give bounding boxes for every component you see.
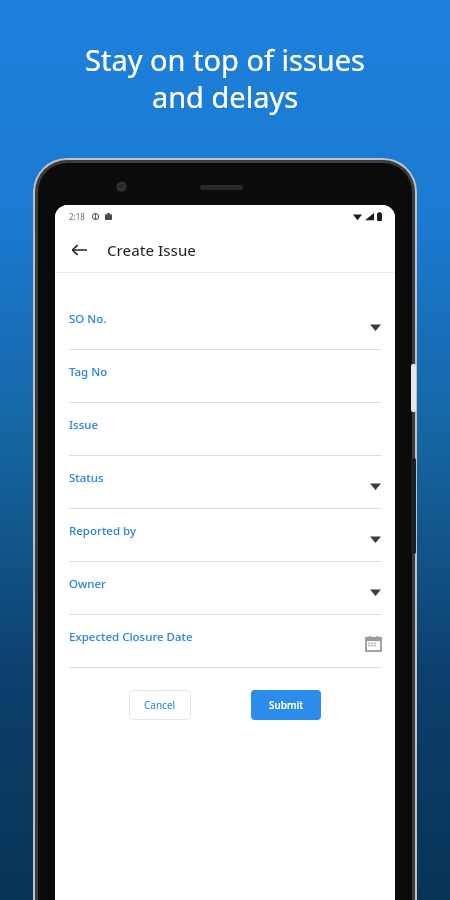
button[interactable]: Cancel bbox=[129, 690, 191, 720]
button[interactable]: Tag No bbox=[58, 350, 392, 403]
button[interactable]: SO No. bbox=[58, 297, 392, 350]
staticText: Reported by bbox=[69, 523, 136, 539]
staticText: Issue bbox=[69, 417, 99, 433]
staticText: Submit bbox=[269, 698, 303, 712]
staticText: Cancel bbox=[144, 698, 176, 712]
staticText: SO No. bbox=[69, 311, 107, 327]
staticText: Status bbox=[69, 470, 104, 486]
staticText: Tag No bbox=[69, 364, 108, 380]
staticText: Expected Closure Date bbox=[69, 629, 193, 645]
staticText: 2:18 bbox=[69, 211, 85, 222]
button[interactable]: Expected Closure Date bbox=[58, 615, 392, 668]
button[interactable]: Submit bbox=[251, 690, 321, 720]
button[interactable]: Back bbox=[63, 234, 95, 266]
button[interactable]: Status bbox=[58, 456, 392, 509]
button[interactable]: Owner bbox=[58, 562, 392, 615]
staticText: Create Issue bbox=[107, 240, 196, 260]
button[interactable]: Reported by bbox=[58, 509, 392, 562]
staticText: Owner bbox=[69, 576, 106, 592]
staticText: Stay on top of issues and delays bbox=[28, 40, 422, 117]
button[interactable]: Issue bbox=[58, 403, 392, 456]
